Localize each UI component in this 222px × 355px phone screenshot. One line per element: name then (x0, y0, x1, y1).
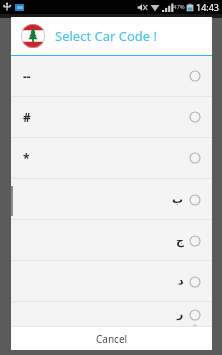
button[interactable]: ر (11, 302, 212, 326)
staticText: ر (177, 308, 184, 321)
other: Select option (189, 70, 201, 82)
staticText: 47% (173, 3, 185, 11)
other: Select option (189, 111, 201, 123)
other: Select option (189, 276, 201, 288)
staticText: Cancel (96, 332, 128, 346)
staticText: * (23, 150, 30, 166)
button[interactable]: ج (11, 220, 212, 260)
other: Select option (189, 309, 201, 321)
button[interactable]: # (11, 97, 212, 137)
staticText: # (23, 109, 31, 125)
button[interactable]: * (11, 138, 212, 178)
button[interactable]: -- (11, 56, 212, 96)
other: Select option (189, 235, 201, 247)
staticText: ب (172, 193, 184, 206)
staticText: ج (176, 234, 184, 247)
other: Select option (189, 152, 201, 164)
other: Select option (189, 194, 201, 206)
staticText: د (178, 275, 184, 288)
button[interactable]: د (11, 261, 212, 301)
button[interactable]: Cancel (11, 327, 212, 350)
button[interactable]: ب (11, 179, 212, 219)
staticText: 14:43 (196, 1, 220, 13)
staticText: Select Car Code ! (55, 27, 158, 45)
staticText: -- (23, 68, 31, 84)
